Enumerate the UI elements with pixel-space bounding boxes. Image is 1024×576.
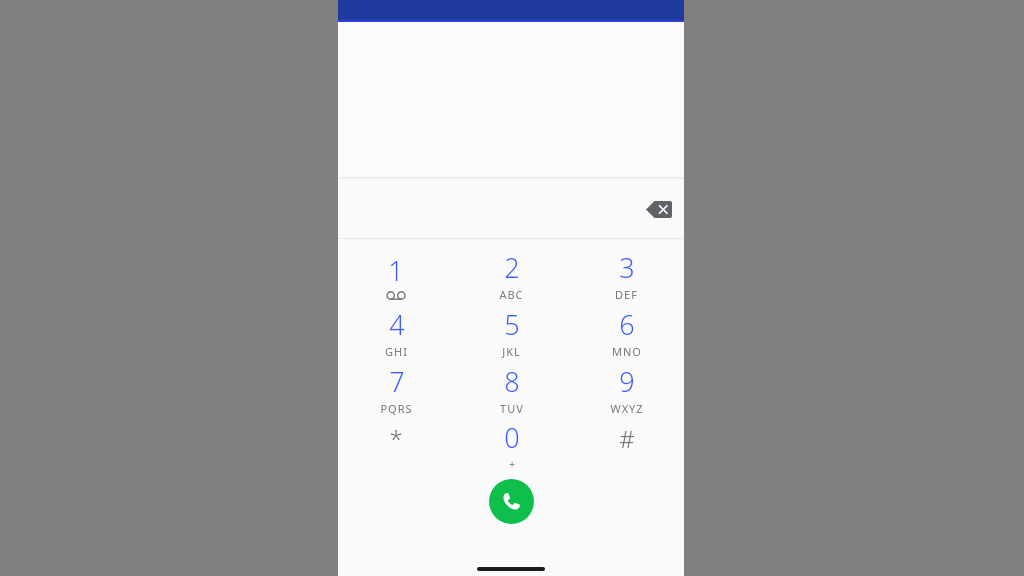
staticText: 6 xyxy=(619,306,635,343)
button[interactable]: 2 xyxy=(454,247,569,304)
staticText: 8 xyxy=(504,363,520,400)
button[interactable]: Call xyxy=(489,479,534,524)
button[interactable]: # xyxy=(569,418,684,471)
button[interactable]: 3 xyxy=(569,247,684,304)
staticText: + xyxy=(509,457,516,471)
button[interactable]: 4 xyxy=(338,304,454,361)
staticText: TUV xyxy=(500,401,524,416)
button[interactable]: 7 xyxy=(338,361,454,418)
staticText: 5 xyxy=(504,306,520,343)
staticText: * xyxy=(389,422,403,455)
staticText: 7 xyxy=(389,363,405,400)
staticText: 9 xyxy=(619,363,635,400)
staticText: MNO xyxy=(612,344,642,359)
staticText: ABC xyxy=(499,287,524,302)
staticText: 0 xyxy=(504,419,520,456)
staticText: PQRS xyxy=(380,401,413,416)
button[interactable]: 1 xyxy=(338,247,454,304)
staticText: 4 xyxy=(389,306,405,343)
staticText: GHI xyxy=(385,344,408,359)
staticText: DEF xyxy=(615,287,638,302)
staticText: 2 xyxy=(504,249,520,286)
button[interactable]: 8 xyxy=(454,361,569,418)
staticText: JKL xyxy=(502,344,521,359)
button[interactable]: Backspace xyxy=(644,198,674,220)
staticText: 1 xyxy=(388,252,404,289)
button[interactable]: 6 xyxy=(569,304,684,361)
staticText: WXYZ xyxy=(610,401,644,416)
button[interactable]: 9 xyxy=(569,361,684,418)
button[interactable]: * xyxy=(338,418,454,471)
staticText: 3 xyxy=(619,249,635,286)
button[interactable]: 5 xyxy=(454,304,569,361)
button[interactable]: 0 xyxy=(454,418,569,471)
staticText: # xyxy=(619,422,635,455)
